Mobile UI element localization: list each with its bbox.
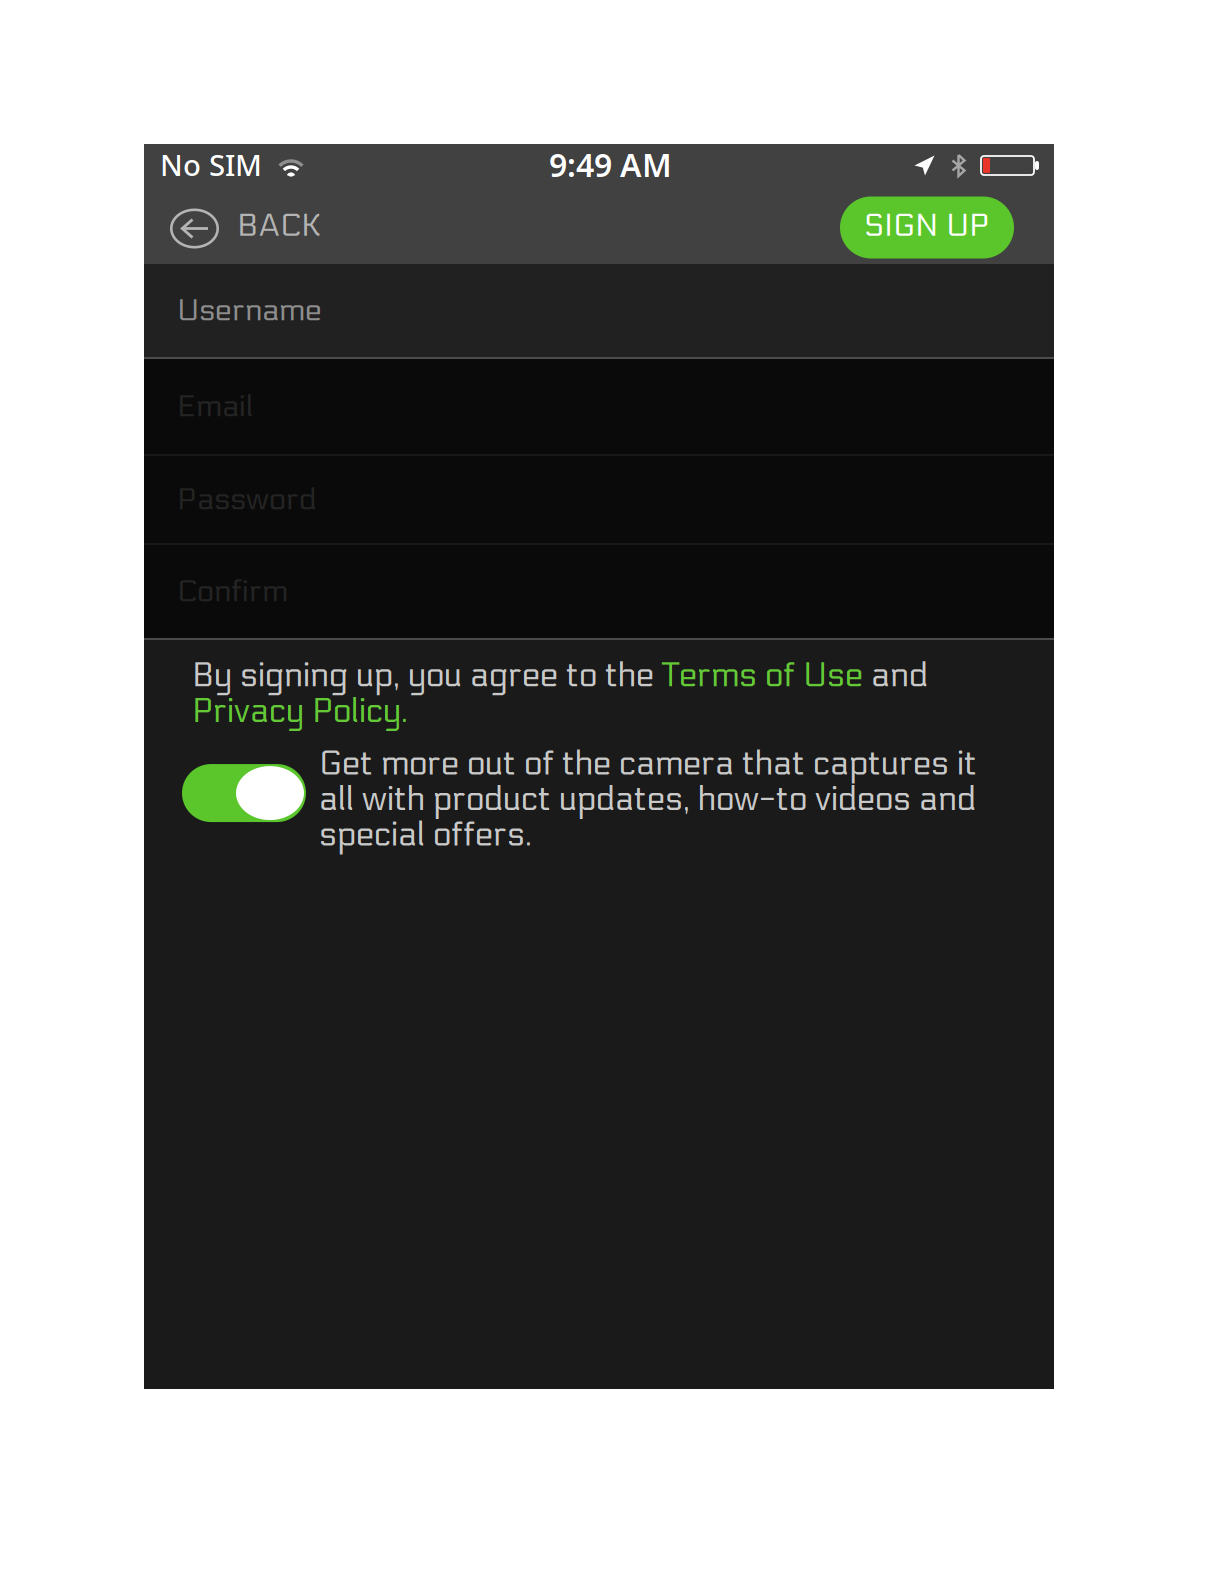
button[interactable]: Password	[144, 456, 1054, 545]
staticText: No SIM	[160, 145, 262, 184]
staticText: 9:49 AM	[549, 143, 672, 186]
button[interactable]: Username	[144, 264, 1054, 359]
staticText: Username	[177, 292, 322, 329]
button[interactable]: Confirm	[144, 545, 1054, 640]
staticText: Get more out of the camera that captures…	[319, 744, 977, 855]
button[interactable]: BACK	[144, 191, 341, 264]
staticText: Email	[177, 388, 254, 425]
staticText: Password	[177, 481, 317, 518]
staticText: Confirm	[177, 573, 288, 610]
button[interactable]: SIGN UP	[840, 196, 1014, 258]
staticText: By signing up, you agree to the Terms of…	[192, 656, 928, 731]
button[interactable]: Receive product updates and offers	[182, 764, 306, 822]
staticText: BACK	[237, 206, 321, 244]
staticText: SIGN UP	[864, 206, 990, 244]
